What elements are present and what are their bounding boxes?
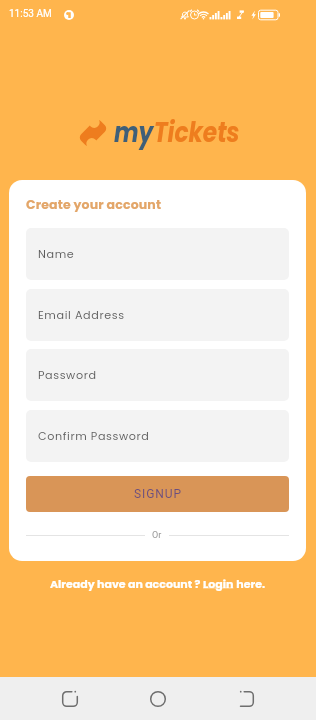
button[interactable]: Name <box>26 228 289 280</box>
staticText: my <box>114 113 154 152</box>
button[interactable]: Email Address <box>26 289 289 341</box>
staticText: here. <box>234 576 266 591</box>
staticText: Name <box>38 246 75 262</box>
button[interactable]: Recent apps <box>52 681 88 717</box>
staticText: Already have an account ? <box>50 576 203 591</box>
button[interactable]: Home <box>140 681 176 717</box>
staticText: Or <box>152 530 162 541</box>
button[interactable]: Recent apps <box>64 677 316 720</box>
button[interactable]: Login <box>203 576 234 591</box>
staticText: Email Address <box>38 307 125 323</box>
staticText: Password <box>38 367 97 383</box>
staticText: Create your account <box>26 196 162 213</box>
staticText: SIGNUP <box>134 487 182 501</box>
staticText: Tickets <box>154 113 240 152</box>
staticText: Confirm Password <box>38 428 150 444</box>
button[interactable]: Back <box>228 681 264 717</box>
button[interactable]: Confirm Password <box>26 410 289 462</box>
button[interactable]: SIGNUP <box>26 476 289 512</box>
staticText: 11:53 AM <box>9 8 52 20</box>
button[interactable]: Password <box>26 349 289 401</box>
